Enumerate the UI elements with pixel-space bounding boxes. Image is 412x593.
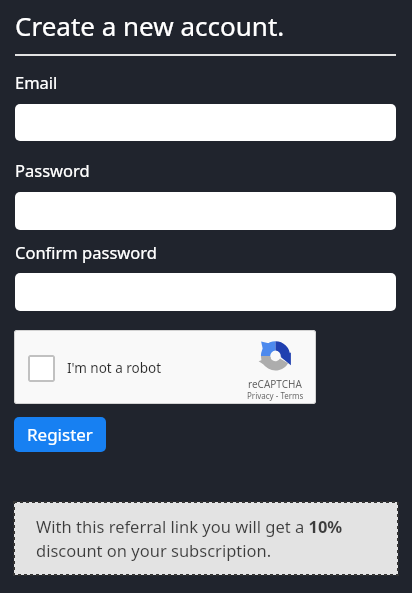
- staticText: Create a new account.: [15, 8, 285, 43]
- button[interactable]: [15, 273, 396, 311]
- staticText: With this referral link you will get a 1…: [36, 515, 343, 562]
- staticText: Confirm password: [15, 241, 157, 263]
- staticText: I'm not a robot: [67, 359, 162, 377]
- button[interactable]: [28, 355, 55, 382]
- staticText: Password: [15, 159, 90, 181]
- staticText: Email: [15, 71, 58, 93]
- staticText: reCAPTCHA: [248, 377, 302, 391]
- button[interactable]: [15, 104, 396, 141]
- button[interactable]: [15, 192, 396, 230]
- button[interactable]: Register: [14, 417, 106, 452]
- staticText: Register: [27, 423, 93, 446]
- staticText: Privacy - Terms: [247, 390, 304, 401]
